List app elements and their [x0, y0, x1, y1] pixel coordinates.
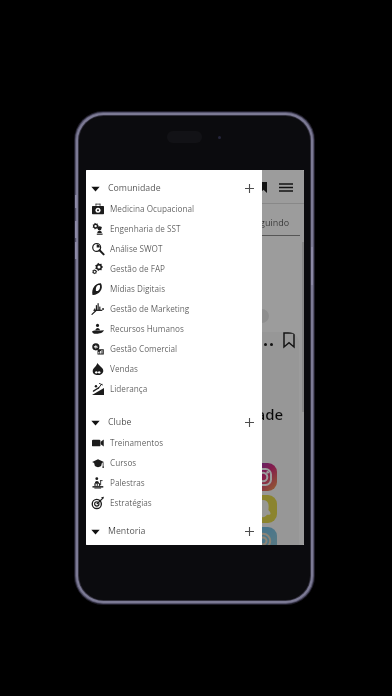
button[interactable]: Palestras: [86, 472, 262, 492]
button[interactable]: Estratégias: [86, 492, 262, 512]
button[interactable]: Saved posts: [253, 176, 273, 198]
staticText: Mentoria: [108, 525, 146, 537]
staticText: Cursos: [110, 457, 137, 468]
button[interactable]: Treinamentos: [86, 432, 262, 452]
staticText: Palestras: [110, 477, 145, 488]
staticText: Comunidade: [191, 404, 284, 424]
button[interactable]: Menu: [275, 176, 297, 198]
button[interactable]: Recursos Humanos: [86, 318, 262, 338]
button[interactable]: Clube: [86, 412, 262, 432]
staticText: Liderança: [110, 383, 148, 394]
staticText: Vendas: [110, 363, 138, 374]
staticText: Gestão de Marketing: [110, 303, 190, 314]
staticText: Estratégias: [110, 497, 152, 508]
button[interactable]: Bookmark: [277, 332, 299, 352]
staticText: Comunidade: [108, 182, 161, 194]
staticText: Seguindo: [250, 216, 290, 228]
staticText: Engenharia de SST: [110, 223, 181, 234]
button[interactable]: Medicina Ocupacional: [86, 198, 262, 218]
button[interactable]: Comunidade: [86, 178, 262, 198]
button[interactable]: Engenharia de SST: [86, 218, 262, 238]
staticText: Treinamentos: [110, 437, 164, 448]
staticText: Clube: [108, 416, 132, 428]
staticText: Gestão de FAP: [110, 263, 166, 274]
staticText: Análise SWOT: [110, 243, 163, 254]
staticText: Recursos Humanos: [110, 323, 184, 334]
button[interactable]: Gestão Comercial: [86, 338, 262, 358]
button[interactable]: Liderança: [86, 378, 262, 398]
button[interactable]: Cursos: [86, 452, 262, 472]
button[interactable]: Gestão de Marketing: [86, 298, 262, 318]
button[interactable]: Vendas: [86, 358, 262, 378]
staticText: Mídias Digitais: [110, 283, 166, 294]
staticText: Medicina Ocupacional: [110, 203, 195, 214]
button[interactable]: Seguindo: [238, 210, 298, 234]
button[interactable]: Análise SWOT: [86, 238, 262, 258]
button[interactable]: Mídias Digitais: [86, 278, 262, 298]
staticText: Gestão Comercial: [110, 343, 178, 354]
button[interactable]: Mentoria: [86, 521, 262, 541]
button[interactable]: Gestão de FAP: [86, 258, 262, 278]
